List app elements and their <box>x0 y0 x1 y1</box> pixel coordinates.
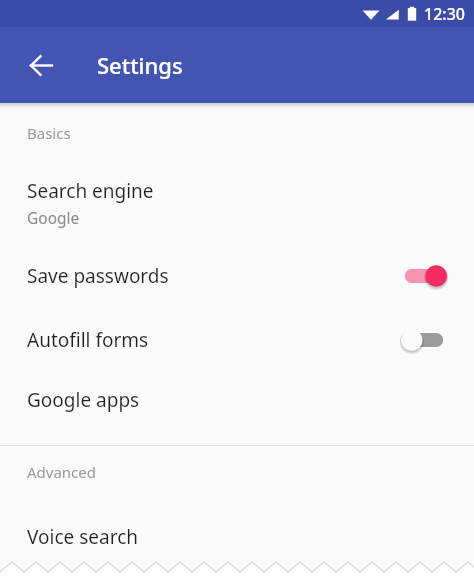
staticText: Voice search <box>27 524 138 550</box>
button[interactable]: Search engine <box>0 176 474 244</box>
button[interactable]: Google apps <box>0 372 474 427</box>
button[interactable]: Back <box>17 41 65 89</box>
staticText: Settings <box>97 50 183 80</box>
button[interactable]: Voice search <box>0 509 474 564</box>
staticText: Advanced <box>27 462 97 482</box>
button[interactable]: Save passwords <box>0 244 474 308</box>
staticText: Google apps <box>27 387 140 413</box>
staticText: Basics <box>27 123 71 143</box>
staticText: Search engine <box>27 178 154 204</box>
staticText: Autofill forms <box>27 327 401 353</box>
staticText: Google <box>27 207 80 228</box>
staticText: Save passwords <box>27 263 401 289</box>
staticText: 12:30 <box>424 3 465 25</box>
button[interactable]: Autofill forms <box>0 308 474 372</box>
